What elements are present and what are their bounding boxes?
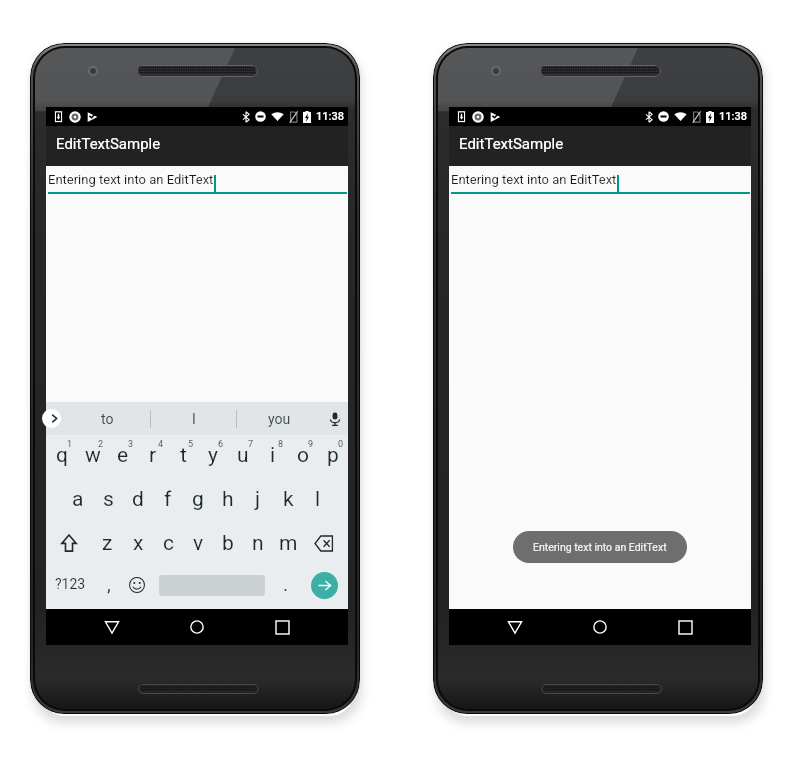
button[interactable]: 4 <box>138 435 168 478</box>
button[interactable]: d <box>123 478 153 521</box>
staticText: 1 <box>67 439 73 450</box>
button[interactable]: k <box>273 478 303 521</box>
staticText: EditTextSample <box>56 135 161 153</box>
button[interactable]: 6 <box>198 435 228 478</box>
staticText: 2 <box>98 439 104 450</box>
staticText: ?123 <box>55 576 86 592</box>
staticText: 11:38 <box>316 110 344 123</box>
staticText: q <box>56 443 68 468</box>
staticText: e <box>117 443 129 468</box>
button[interactable]: x <box>123 521 153 565</box>
button[interactable]: g <box>183 478 213 521</box>
button[interactable]: Shift <box>46 521 92 565</box>
button[interactable]: 8 <box>258 435 288 478</box>
button[interactable]: j <box>243 478 273 521</box>
staticText: l <box>315 487 321 512</box>
button[interactable]: 0 <box>318 435 348 478</box>
staticText: 3 <box>128 439 134 450</box>
button[interactable]: Recent apps <box>666 609 706 645</box>
button[interactable]: 7 <box>228 435 258 478</box>
button[interactable]: Enter <box>300 565 348 609</box>
staticText: g <box>192 487 204 512</box>
button[interactable]: Voice input <box>322 402 348 435</box>
button[interactable]: Back <box>92 609 132 645</box>
staticText: 11:38 <box>719 110 747 123</box>
button[interactable]: m <box>273 521 303 565</box>
staticText: w <box>85 443 101 468</box>
staticText: b <box>222 531 234 556</box>
button[interactable]: Backspace <box>303 521 348 565</box>
button[interactable]: b <box>213 521 243 565</box>
staticText: I <box>192 411 196 427</box>
staticText: u <box>237 443 249 468</box>
staticText: a <box>72 487 84 512</box>
staticText: k <box>283 487 294 512</box>
staticText: to <box>101 411 114 427</box>
staticText: 5 <box>188 439 194 450</box>
button[interactable]: 3 <box>108 435 138 478</box>
button[interactable]: Space <box>151 565 272 609</box>
staticText: 4 <box>158 439 164 450</box>
button[interactable]: l <box>303 478 333 521</box>
button[interactable]: 1 <box>46 435 77 478</box>
staticText: z <box>102 531 113 556</box>
button[interactable]: 5 <box>168 435 198 478</box>
button[interactable]: v <box>183 521 213 565</box>
button[interactable]: . <box>272 565 300 609</box>
staticText: y <box>208 443 218 468</box>
button[interactable]: c <box>153 521 183 565</box>
button[interactable]: Home <box>177 609 217 645</box>
staticText: h <box>222 487 234 512</box>
staticText: n <box>252 531 264 556</box>
staticText: i <box>270 443 276 468</box>
button[interactable]: ?123 <box>46 565 95 609</box>
staticText: t <box>180 443 187 468</box>
staticText: . <box>283 573 289 595</box>
button[interactable]: EditTextSample <box>449 126 751 166</box>
button[interactable]: Entering text into an EditText <box>513 531 687 563</box>
button[interactable]: z <box>92 521 123 565</box>
button[interactable]: Back <box>495 609 535 645</box>
staticText: EditTextSample <box>459 135 564 153</box>
button[interactable]: Home <box>580 609 620 645</box>
button[interactable]: 2 <box>77 435 108 478</box>
button[interactable]: 9 <box>288 435 318 478</box>
button[interactable]: n <box>243 521 273 565</box>
staticText: d <box>132 487 144 512</box>
button[interactable]: to <box>65 402 150 435</box>
button[interactable]: I <box>151 402 236 435</box>
button[interactable]: Emoji <box>123 565 151 609</box>
button[interactable]: , <box>95 565 123 609</box>
button[interactable]: h <box>213 478 243 521</box>
button[interactable]: a <box>62 478 93 521</box>
staticText: o <box>297 443 309 468</box>
staticText: 0 <box>338 439 344 450</box>
staticText: , <box>107 573 111 595</box>
staticText: Entering text into an EditText <box>533 541 667 553</box>
staticText: c <box>163 531 174 556</box>
staticText: m <box>279 531 298 556</box>
button[interactable]: Recent apps <box>263 609 303 645</box>
button[interactable]: EditTextSample <box>46 126 348 166</box>
staticText: Entering text into an EditText <box>451 172 617 187</box>
staticText: r <box>149 443 157 468</box>
staticText: Entering text into an EditText <box>48 172 214 187</box>
staticText: 7 <box>248 439 254 450</box>
button[interactable]: you <box>237 402 322 435</box>
button[interactable]: s <box>93 478 123 521</box>
staticText: j <box>255 487 261 512</box>
staticText: f <box>164 487 172 512</box>
staticText: p <box>327 443 339 468</box>
staticText: s <box>103 487 114 512</box>
staticText: 6 <box>218 439 224 450</box>
staticText: you <box>268 411 291 427</box>
button[interactable]: Show more options <box>42 409 61 428</box>
button[interactable]: f <box>153 478 183 521</box>
staticText: 9 <box>308 439 314 450</box>
staticText: 8 <box>278 439 284 450</box>
staticText: x <box>133 531 144 556</box>
staticText: v <box>193 531 204 556</box>
